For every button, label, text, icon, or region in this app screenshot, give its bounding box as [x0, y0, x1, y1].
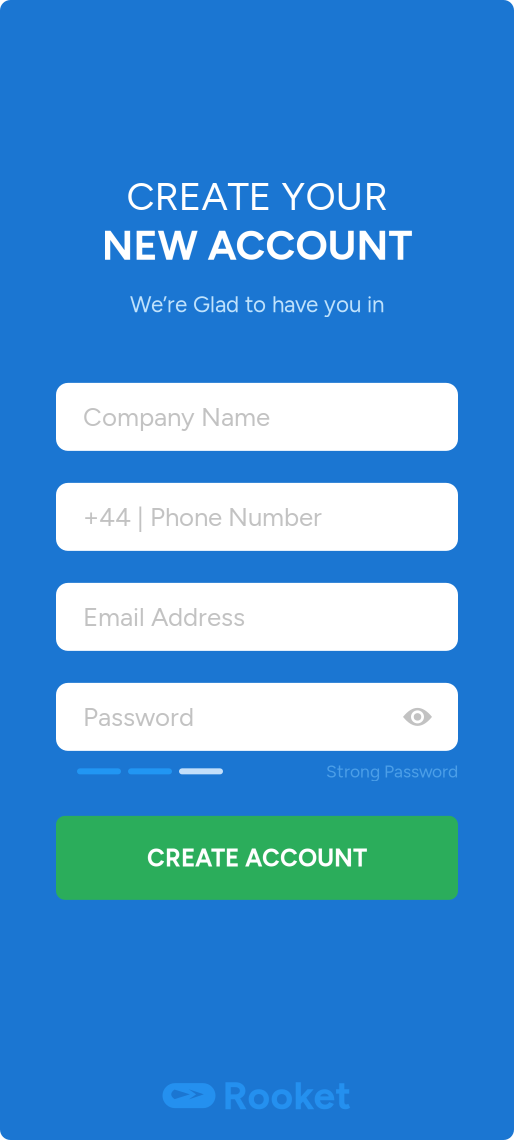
- button[interactable]: Password: [56, 683, 458, 751]
- staticText: +44 | Phone Number: [83, 501, 322, 532]
- button[interactable]: Email Address: [56, 583, 458, 651]
- staticText: CREATE ACCOUNT: [147, 843, 367, 872]
- staticText: Password: [83, 701, 194, 732]
- button[interactable]: Company Name: [56, 383, 458, 451]
- staticText: Email Address: [83, 601, 245, 632]
- staticText: Company Name: [83, 401, 270, 432]
- button[interactable]: CREATE ACCOUNT: [56, 816, 458, 900]
- button[interactable]: +44 | Phone Number: [56, 483, 458, 551]
- staticText: Rooket: [222, 1072, 351, 1119]
- staticText: NEW ACCOUNT: [101, 221, 412, 270]
- staticText: We’re Glad to have you in: [130, 291, 384, 318]
- staticText: Strong Password: [326, 761, 458, 782]
- staticText: CREATE YOUR: [126, 173, 387, 220]
